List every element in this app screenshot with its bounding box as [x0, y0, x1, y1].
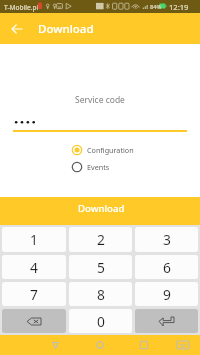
button[interactable]: Back: [0, 13, 33, 44]
staticText: 0: [97, 312, 105, 331]
staticText: 6: [163, 258, 171, 277]
button[interactable]: Configuration: [71, 144, 143, 156]
staticText: Download: [38, 21, 94, 37]
staticText: 12:19: [169, 2, 189, 12]
staticText: Configuration: [87, 145, 134, 155]
staticText: 2: [97, 230, 105, 249]
button[interactable]: 8: [69, 282, 132, 306]
button[interactable]: 9: [135, 282, 198, 306]
staticText: Download: [78, 202, 125, 215]
button[interactable]: 3: [135, 227, 198, 252]
button[interactable]: 7: [2, 282, 66, 306]
staticText: Service code: [0, 94, 200, 106]
staticText: 84%: [150, 3, 162, 11]
button[interactable]: 0: [69, 309, 132, 333]
button[interactable]: Back: [43, 335, 67, 355]
staticText: 1: [30, 230, 38, 249]
staticText: 3: [163, 230, 171, 249]
button[interactable]: 5: [69, 255, 132, 279]
staticText: 4: [30, 258, 38, 277]
button[interactable]: 4: [2, 255, 66, 279]
staticText: T-Mobile.pl: [4, 3, 39, 12]
button[interactable]: Keyboard: [171, 335, 195, 355]
button[interactable]: Backspace: [2, 309, 66, 333]
staticText: 5: [97, 258, 105, 277]
staticText: 8: [97, 285, 105, 304]
button[interactable]: 6: [135, 255, 198, 279]
button[interactable]: Home: [88, 335, 112, 355]
staticText: Events: [87, 162, 110, 172]
button[interactable]: Recents: [132, 335, 156, 355]
button[interactable]: 1: [2, 227, 66, 252]
button[interactable]: 2: [69, 227, 132, 252]
staticText: 9: [163, 285, 171, 304]
button[interactable]: Enter: [135, 309, 198, 333]
button[interactable]: Download: [0, 197, 200, 225]
staticText: 7: [30, 285, 38, 304]
button[interactable]: Events: [71, 161, 143, 173]
